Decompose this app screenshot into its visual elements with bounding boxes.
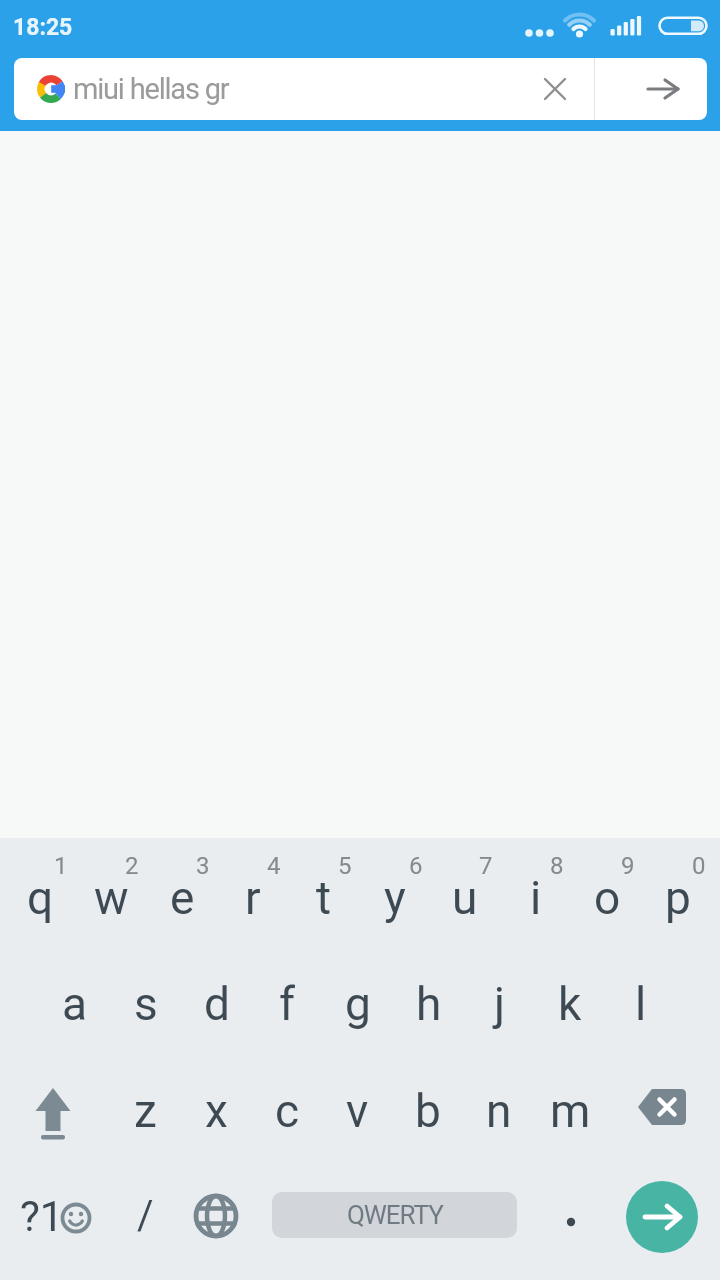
button[interactable] xyxy=(626,1181,698,1253)
staticText: s xyxy=(134,977,158,1031)
button[interactable]: e xyxy=(147,859,217,937)
button[interactable] xyxy=(620,59,705,119)
staticText: c xyxy=(275,1084,300,1138)
button[interactable]: b xyxy=(393,1072,463,1150)
button[interactable]: n xyxy=(464,1072,534,1150)
staticText: z xyxy=(134,1084,157,1138)
staticText: 6 xyxy=(409,852,423,880)
staticText: i xyxy=(530,871,542,925)
button[interactable]: t xyxy=(289,859,359,937)
staticText: 4 xyxy=(267,852,281,880)
staticText: 8 xyxy=(550,852,564,880)
staticText: 18:25 xyxy=(13,14,73,41)
staticText: t xyxy=(316,871,332,925)
staticText: a xyxy=(62,977,88,1031)
button[interactable]: d xyxy=(182,965,252,1043)
button[interactable]: x xyxy=(181,1072,251,1150)
staticText: x xyxy=(205,1084,228,1138)
button[interactable] xyxy=(181,1181,251,1251)
staticText: QWERTY xyxy=(347,1200,443,1230)
staticText: f xyxy=(279,977,295,1031)
staticText: k xyxy=(558,977,582,1031)
button[interactable]: i xyxy=(501,859,571,937)
staticText: y xyxy=(384,871,406,925)
staticText: r xyxy=(245,871,261,925)
staticText: 7 xyxy=(479,852,493,880)
staticText: 3 xyxy=(196,852,210,880)
staticText: b xyxy=(415,1084,441,1138)
button[interactable] xyxy=(627,1074,697,1144)
staticText: m xyxy=(550,1084,591,1138)
button[interactable]: ?1 xyxy=(14,1183,99,1253)
button[interactable] xyxy=(525,59,585,119)
staticText: n xyxy=(486,1084,512,1138)
staticText: miui hellas gr xyxy=(73,72,229,106)
staticText: w xyxy=(94,871,129,925)
button[interactable]: c xyxy=(252,1072,322,1150)
staticText: g xyxy=(345,977,371,1031)
staticText: v xyxy=(346,1084,369,1138)
button[interactable]: p xyxy=(643,859,713,937)
button[interactable]: l xyxy=(606,965,676,1043)
button[interactable]: / xyxy=(110,1176,180,1254)
staticText: 2 xyxy=(125,852,139,880)
button[interactable]: QWERTY xyxy=(272,1192,517,1238)
staticText: h xyxy=(416,977,442,1031)
staticText: 9 xyxy=(621,852,635,880)
staticText: ?1 xyxy=(20,1192,64,1241)
button[interactable]: s xyxy=(111,965,181,1043)
button[interactable]: j xyxy=(465,965,535,1043)
staticText: q xyxy=(27,871,54,925)
staticText: p xyxy=(665,871,691,925)
staticText: e xyxy=(170,871,195,925)
button[interactable]: r xyxy=(218,859,288,937)
button[interactable]: k xyxy=(535,965,605,1043)
button[interactable]: u xyxy=(430,859,500,937)
staticText: d xyxy=(204,977,230,1031)
button[interactable]: a xyxy=(40,965,110,1043)
staticText: o xyxy=(594,871,621,925)
staticText: j xyxy=(494,977,506,1031)
button[interactable]: m xyxy=(535,1072,605,1150)
button[interactable]: f xyxy=(252,965,322,1043)
staticText: l xyxy=(635,977,647,1031)
button[interactable]: z xyxy=(110,1072,180,1150)
staticText: u xyxy=(452,871,478,925)
button[interactable]: h xyxy=(394,965,464,1043)
button[interactable]: q xyxy=(5,859,75,937)
button[interactable]: v xyxy=(322,1072,392,1150)
staticText: / xyxy=(137,1192,154,1239)
staticText: 5 xyxy=(338,852,352,880)
button[interactable]: miui hellas gr xyxy=(14,58,707,120)
button[interactable]: w xyxy=(76,859,146,937)
staticText: 1 xyxy=(54,852,68,880)
button[interactable]: o xyxy=(572,859,642,937)
button[interactable]: y xyxy=(360,859,430,937)
button[interactable] xyxy=(18,1078,88,1148)
button[interactable]: g xyxy=(323,965,393,1043)
staticText: 0 xyxy=(692,852,706,880)
